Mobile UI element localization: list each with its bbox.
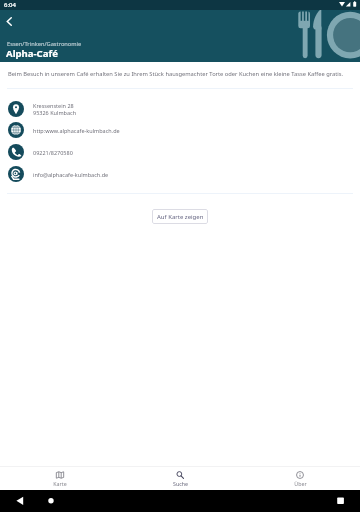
button[interactable]: Auf Karte zeigen <box>152 209 208 224</box>
button[interactable]: http:www.alphacafe-kulmbach.de <box>0 119 360 141</box>
button[interactable]: Suche <box>120 467 240 487</box>
staticText: Kressenstein 28 <box>33 102 74 109</box>
staticText: Beim Besuch in unserem Café erhalten Sie… <box>8 70 356 78</box>
staticText: 95326 Kulmbach <box>33 109 77 116</box>
staticText: Auf Karte zeigen <box>157 213 204 221</box>
staticText: Karte <box>53 480 67 487</box>
staticText: Suche <box>173 480 188 487</box>
staticText: 6:04 <box>4 1 16 9</box>
staticText: http:www.alphacafe-kulmbach.de <box>33 127 120 134</box>
button[interactable]: Karte <box>0 467 120 487</box>
button[interactable]: Back <box>1 13 17 29</box>
staticText: Alpha-Café <box>6 47 58 60</box>
staticText: 09221/8270580 <box>33 149 73 156</box>
button[interactable]: Kressenstein 28 <box>0 98 360 120</box>
button[interactable]: 09221/8270580 <box>0 141 360 163</box>
staticText: Über <box>294 480 307 487</box>
button[interactable]: Über <box>240 467 360 487</box>
button[interactable]: info@alphacafe-kulmbach.de <box>0 163 360 185</box>
staticText: Essen/Trinken/Gastronomie <box>7 40 82 48</box>
staticText: info@alphacafe-kulmbach.de <box>33 171 109 178</box>
